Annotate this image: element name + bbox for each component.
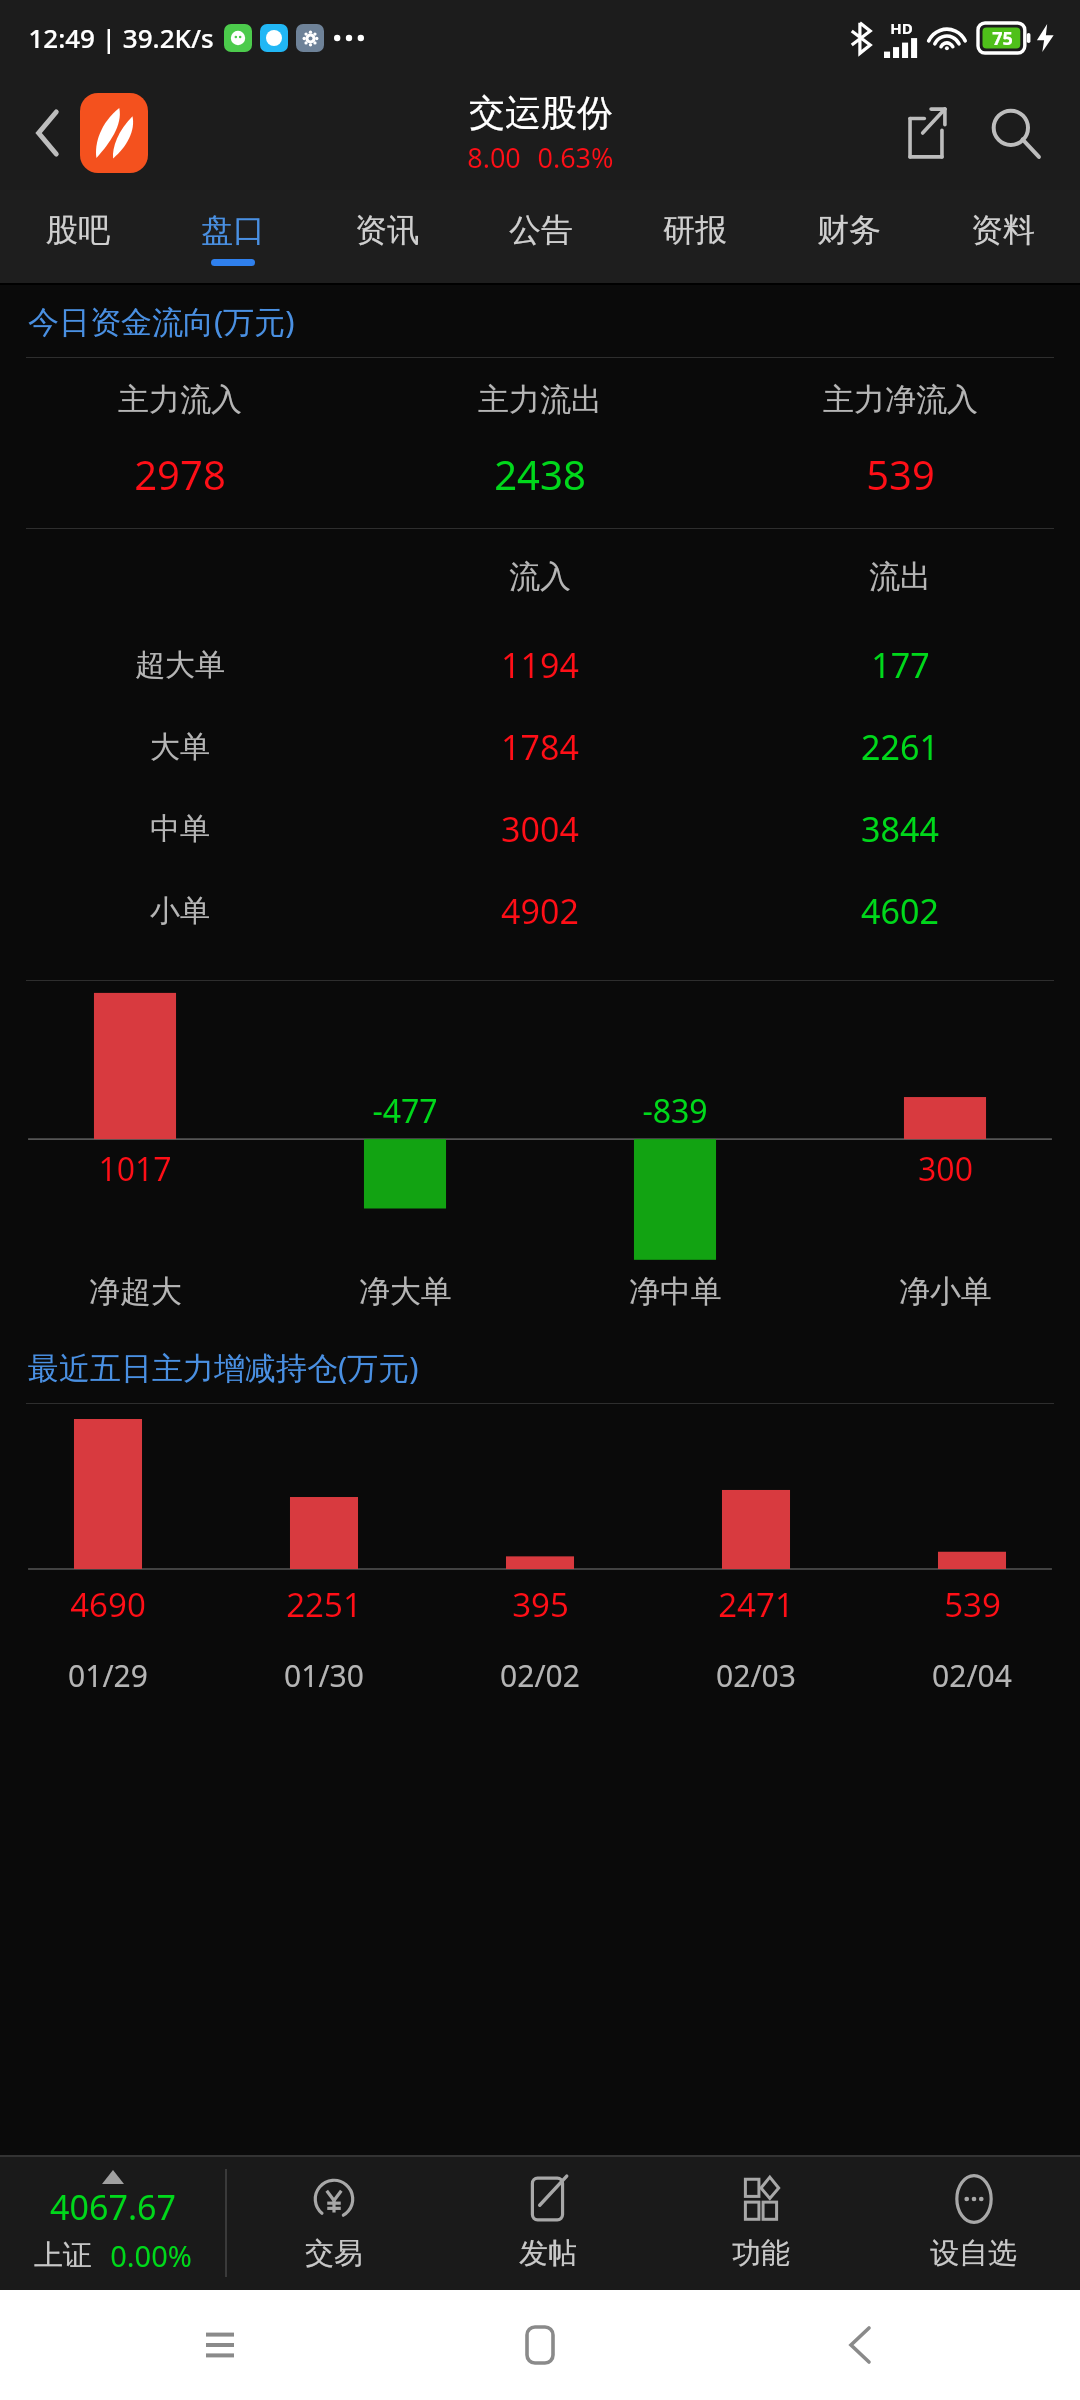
- staticText: 小单: [150, 892, 210, 930]
- staticText: 公告: [509, 210, 573, 250]
- staticText: 净大单: [359, 1272, 452, 1311]
- staticText: 交易: [305, 2235, 363, 2272]
- staticText: 75: [992, 26, 1013, 51]
- staticText: 8.00: [467, 139, 521, 176]
- button[interactable]: Share: [886, 93, 966, 173]
- staticText: 4690: [70, 1582, 146, 1627]
- staticText: 4902: [501, 888, 579, 934]
- staticText: 2978: [134, 447, 226, 501]
- staticText: 0.63%: [537, 139, 614, 176]
- button[interactable]: Search: [972, 90, 1058, 176]
- staticText: 02/02: [500, 1655, 580, 1696]
- staticText: 4602: [861, 888, 939, 934]
- staticText: 交运股份: [469, 90, 613, 135]
- staticText: 大单: [150, 728, 210, 766]
- staticText: 12:49 | 39.2K/s: [28, 20, 214, 55]
- staticText: 今日资金流向(万元): [28, 300, 295, 342]
- button[interactable]: 盘口: [155, 190, 310, 285]
- staticText: 流入: [509, 557, 571, 596]
- staticText: 主力净流入: [823, 380, 978, 419]
- staticText: -839: [642, 1089, 708, 1133]
- staticText: 1784: [501, 724, 579, 770]
- button[interactable]: 中单: [0, 788, 1080, 870]
- button[interactable]: 大单: [0, 706, 1080, 788]
- staticText: 1194: [501, 642, 579, 688]
- staticText: 2251: [286, 1582, 362, 1627]
- button[interactable]: 发帖: [441, 2155, 654, 2290]
- staticText: 2471: [718, 1582, 794, 1627]
- button[interactable]: 超大单: [0, 624, 1080, 706]
- staticText: 0.00%: [110, 2236, 192, 2275]
- button[interactable]: 公告: [464, 190, 618, 285]
- button[interactable]: 功能: [654, 2155, 867, 2290]
- staticText: 净小单: [899, 1272, 992, 1311]
- button[interactable]: 4067.67: [0, 2155, 225, 2290]
- button[interactable]: 资讯: [310, 190, 464, 285]
- staticText: 净中单: [629, 1272, 722, 1311]
- button[interactable]: Back: [820, 2305, 900, 2385]
- button[interactable]: 设自选: [867, 2155, 1080, 2290]
- staticText: 最近五日主力增减持仓(万元): [28, 1346, 419, 1388]
- staticText: HD: [890, 18, 913, 38]
- staticText: 3004: [501, 806, 579, 852]
- staticText: 设自选: [930, 2235, 1017, 2272]
- staticText: 中单: [150, 810, 210, 848]
- staticText: 300: [918, 1147, 973, 1191]
- button[interactable]: Recents: [180, 2305, 260, 2385]
- staticText: 资讯: [355, 210, 419, 250]
- button[interactable]: 交易: [227, 2155, 441, 2290]
- staticText: 01/30: [284, 1655, 364, 1696]
- staticText: 盘口: [201, 210, 265, 250]
- staticText: 539: [866, 447, 935, 501]
- staticText: 02/04: [932, 1655, 1012, 1696]
- staticText: 2261: [861, 724, 939, 770]
- staticText: 上证: [34, 2237, 92, 2274]
- staticText: 主力流入: [118, 380, 242, 419]
- button[interactable]: Back: [20, 98, 74, 168]
- button[interactable]: 研报: [618, 190, 772, 285]
- button[interactable]: 小单: [0, 870, 1080, 952]
- staticText: 3844: [861, 806, 939, 852]
- staticText: 539: [944, 1582, 1001, 1627]
- button[interactable]: 财务: [772, 190, 926, 285]
- button[interactable]: Home: [500, 2305, 580, 2385]
- staticText: 发帖: [519, 2235, 577, 2272]
- staticText: 主力流出: [478, 380, 602, 419]
- staticText: 395: [512, 1582, 569, 1627]
- button[interactable]: App logo: [80, 93, 148, 173]
- staticText: 净超大: [89, 1272, 182, 1311]
- button[interactable]: 股吧: [0, 190, 155, 285]
- staticText: 功能: [732, 2235, 790, 2272]
- staticText: 财务: [817, 210, 881, 250]
- staticText: 研报: [663, 210, 727, 250]
- staticText: 01/29: [68, 1655, 148, 1696]
- staticText: -477: [372, 1089, 438, 1133]
- staticText: 02/03: [716, 1655, 796, 1696]
- staticText: 2438: [494, 447, 586, 501]
- button[interactable]: 资料: [926, 190, 1080, 285]
- staticText: 流出: [869, 557, 931, 596]
- staticText: 超大单: [135, 646, 225, 684]
- staticText: 177: [871, 642, 930, 688]
- staticText: 4067.67: [50, 2184, 176, 2230]
- staticText: 资料: [971, 210, 1035, 250]
- staticText: 股吧: [46, 210, 110, 250]
- staticText: 1017: [98, 1147, 172, 1191]
